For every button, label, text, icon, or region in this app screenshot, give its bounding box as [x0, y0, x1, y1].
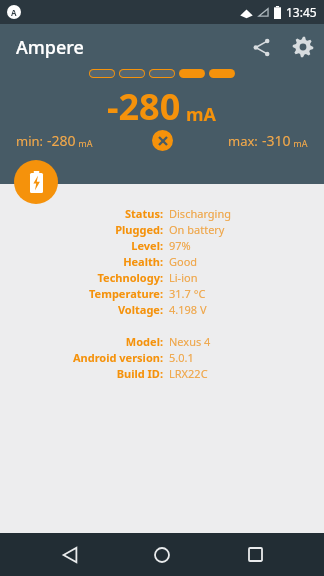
button[interactable]: Share	[240, 26, 282, 68]
staticText: max:	[228, 132, 262, 150]
staticText: 5.0.1	[169, 350, 194, 365]
button[interactable]: Back	[47, 533, 93, 576]
button[interactable]: Settings	[282, 26, 324, 68]
staticText: Good	[169, 254, 198, 269]
staticText: Temperature:	[0, 286, 163, 301]
staticText: Discharging	[169, 206, 231, 221]
button[interactable]: Battery info	[14, 160, 58, 204]
staticText: Build ID:	[0, 366, 163, 381]
staticText: 97%	[169, 238, 191, 253]
staticText: -280	[107, 82, 181, 131]
staticText: Android version:	[0, 350, 163, 365]
staticText: -310	[262, 131, 291, 150]
staticText: LRX22C	[169, 366, 208, 381]
button[interactable]: Reset	[152, 130, 173, 151]
staticText: 13:45	[286, 4, 317, 20]
staticText: 31.7 °C	[169, 286, 206, 301]
staticText: min:	[16, 132, 47, 150]
staticText: Level:	[0, 238, 163, 253]
button[interactable]: Home	[139, 533, 185, 576]
staticText: On battery	[169, 222, 225, 237]
staticText: Plugged:	[0, 222, 163, 237]
button[interactable]: Recent apps	[232, 533, 278, 576]
staticText: Voltage:	[0, 302, 163, 317]
staticText: 4.198 V	[169, 302, 207, 317]
staticText: -280	[47, 131, 76, 150]
staticText: mA	[76, 137, 93, 149]
staticText: A	[11, 7, 17, 18]
staticText: Li-ion	[169, 270, 198, 285]
staticText: Technology:	[0, 270, 163, 285]
staticText: Nexus 4	[169, 334, 211, 349]
staticText: Model:	[0, 334, 163, 349]
staticText: Ampere	[16, 35, 240, 60]
staticText: Health:	[0, 254, 163, 269]
staticText: mA	[291, 137, 308, 149]
staticText: Status:	[0, 206, 163, 221]
staticText: mA	[186, 102, 217, 127]
